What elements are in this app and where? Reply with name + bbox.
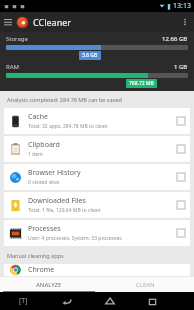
staticText: 13:13 (173, 1, 191, 11)
button[interactable]: Home (88, 292, 131, 310)
staticText: 12.66 GB (162, 35, 188, 43)
button[interactable]: Select Clipboard (177, 145, 185, 153)
staticText: CCleaner (33, 16, 71, 28)
staticText: Total: 32 apps, 284.78 MB to clean (28, 123, 108, 130)
staticText: Processes (28, 224, 61, 234)
button[interactable]: CLEAN (97, 277, 194, 292)
button[interactable]: Select Downloaded Files (177, 201, 185, 209)
staticText: User: 4 processes, System: 33 processes (28, 235, 122, 242)
staticText: 1 item (28, 151, 43, 158)
staticText: Clipboard (28, 140, 60, 150)
staticText: RAM (6, 63, 20, 71)
button[interactable]: Recent apps (131, 292, 174, 310)
staticText: Manual cleaning apps (7, 252, 64, 259)
staticText: 3.6 GB (82, 52, 98, 59)
staticText: 1 GB (174, 63, 188, 71)
staticText: Storage (6, 35, 28, 43)
button[interactable]: Chrome (4, 264, 190, 276)
staticText: Total: 1 file, 129.64 MB to clean (28, 207, 101, 214)
staticText: CLEAN (136, 281, 155, 289)
staticText: Downloaded Files (28, 196, 86, 206)
button[interactable]: Cache (4, 108, 190, 134)
button[interactable]: Browser History (4, 164, 190, 190)
button[interactable]: Open navigation drawer (0, 14, 16, 30)
staticText: 0 visited sites (28, 179, 60, 186)
staticText: [T] (19, 296, 28, 306)
button[interactable]: Back (46, 292, 88, 310)
staticText: Analysis completed: 284.78 MB can be sav… (7, 96, 122, 103)
staticText: 768.72 MB (129, 80, 154, 87)
button[interactable]: Processes (4, 220, 190, 246)
button[interactable]: More options (176, 13, 194, 31)
button[interactable]: Select Browser History (177, 173, 185, 181)
button[interactable]: Clipboard (4, 136, 190, 162)
staticText: Cache (28, 112, 48, 122)
staticText: ANALYZE (36, 281, 62, 289)
button[interactable]: Keyboard (0, 292, 46, 310)
button[interactable]: Downloaded Files (4, 192, 190, 218)
staticText: Browser History (28, 168, 81, 178)
button[interactable]: ANALYZE (0, 277, 97, 292)
button[interactable]: Select Processes (177, 229, 185, 237)
staticText: Chrome (28, 265, 55, 275)
button[interactable]: Select Cache (177, 117, 185, 125)
